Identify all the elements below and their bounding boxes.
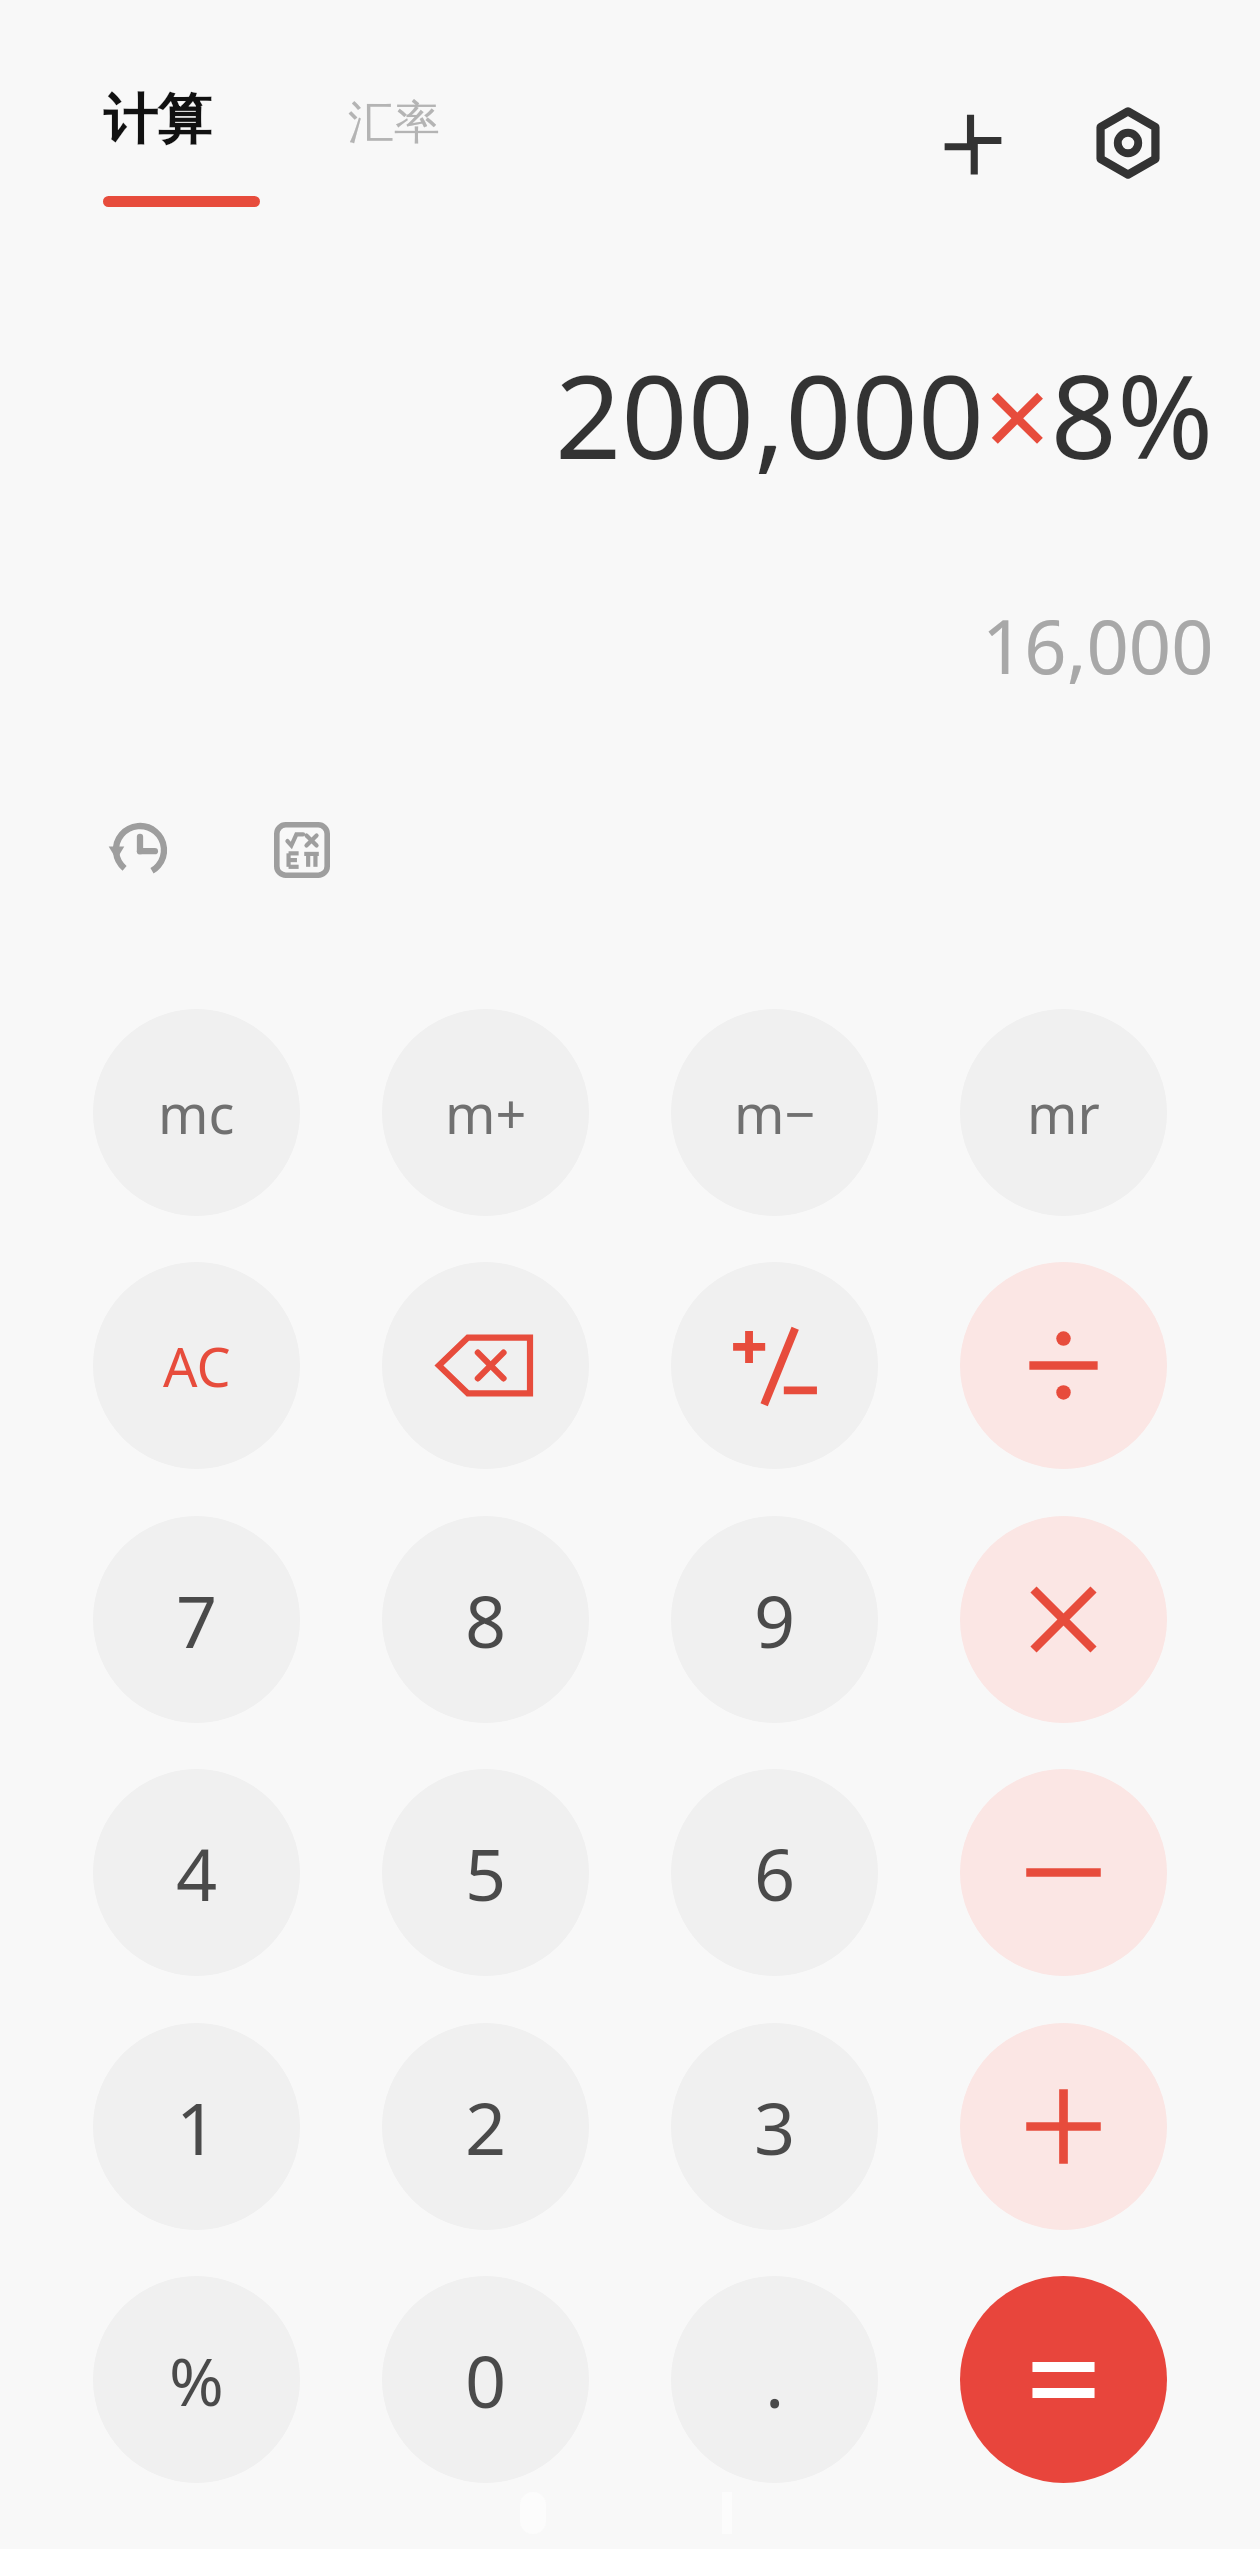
staticText: 计算 bbox=[103, 86, 211, 154]
button[interactable]: 2 bbox=[382, 2023, 589, 2230]
staticText: m− bbox=[734, 1076, 816, 1150]
button[interactable]: 7 bbox=[93, 1516, 300, 1723]
button[interactable]: 1 bbox=[93, 2023, 300, 2230]
staticText: 4 bbox=[176, 1824, 218, 1922]
button[interactable]: 8 bbox=[382, 1516, 589, 1723]
button[interactable]: m− bbox=[671, 1009, 878, 1216]
button[interactable]: Collapse bbox=[925, 95, 1021, 191]
staticText: % bbox=[169, 2335, 224, 2425]
staticText: 3 bbox=[754, 2078, 796, 2176]
staticText: . bbox=[765, 2331, 785, 2429]
button[interactable]: Equals bbox=[960, 2276, 1167, 2483]
staticText: m+ bbox=[445, 1076, 527, 1150]
button[interactable]: Multiply bbox=[960, 1516, 1167, 1723]
button[interactable]: 3 bbox=[671, 2023, 878, 2230]
staticText: mr bbox=[1027, 1076, 1100, 1150]
button[interactable]: mc bbox=[93, 1009, 300, 1216]
staticText: 8 bbox=[465, 1571, 507, 1669]
button[interactable]: m+ bbox=[382, 1009, 589, 1216]
button[interactable]: AC bbox=[93, 1262, 300, 1469]
button[interactable]: mr bbox=[960, 1009, 1167, 1216]
button[interactable]: 汇率 bbox=[340, 88, 448, 158]
button[interactable]: Scientific bbox=[258, 806, 346, 894]
button[interactable]: 4 bbox=[93, 1769, 300, 1976]
button[interactable]: History bbox=[96, 806, 184, 894]
button[interactable]: . bbox=[671, 2276, 878, 2483]
staticText: 2 bbox=[465, 2078, 507, 2176]
button[interactable]: 5 bbox=[382, 1769, 589, 1976]
staticText: 1 bbox=[176, 2078, 218, 2176]
button[interactable]: 0 bbox=[382, 2276, 589, 2483]
staticText: 200,000×8% bbox=[555, 335, 1214, 493]
button[interactable]: 6 bbox=[671, 1769, 878, 1976]
staticText: 6 bbox=[754, 1824, 796, 1922]
staticText: 5 bbox=[465, 1824, 507, 1922]
button[interactable]: 9 bbox=[671, 1516, 878, 1723]
staticText: mc bbox=[158, 1076, 235, 1150]
staticText: 7 bbox=[176, 1571, 218, 1669]
button[interactable]: Divide bbox=[960, 1262, 1167, 1469]
staticText: 0 bbox=[465, 2331, 507, 2429]
button[interactable]: 计算 bbox=[95, 80, 219, 160]
staticText: AC bbox=[163, 1329, 231, 1403]
button[interactable]: Plus minus bbox=[671, 1262, 878, 1469]
staticText: 16,000 bbox=[982, 595, 1214, 696]
button[interactable]: Minus bbox=[960, 1769, 1167, 1976]
staticText: 9 bbox=[754, 1571, 796, 1669]
button[interactable]: Plus bbox=[960, 2023, 1167, 2230]
button[interactable]: % bbox=[93, 2276, 300, 2483]
button[interactable]: Settings bbox=[1080, 95, 1176, 191]
staticText: 汇率 bbox=[348, 94, 440, 152]
button[interactable]: Backspace bbox=[382, 1262, 589, 1469]
